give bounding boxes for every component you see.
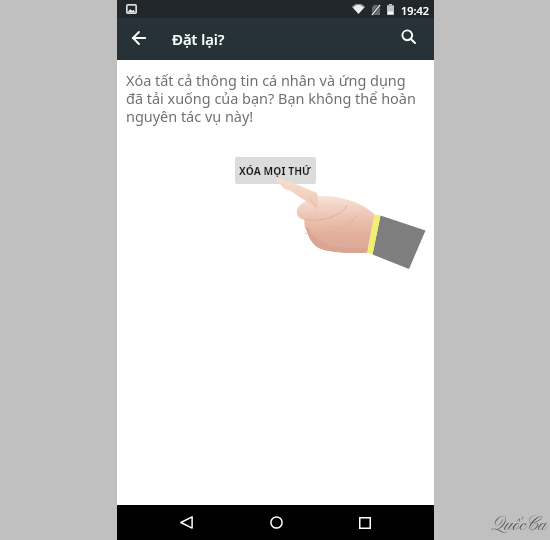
staticText: Đặt lại?	[172, 29, 225, 49]
button[interactable]: Search	[392, 21, 426, 55]
button[interactable]: Back	[122, 21, 156, 55]
button[interactable]: Recents	[343, 505, 387, 540]
staticText: QuốcCa	[491, 513, 547, 537]
staticText: 19:42	[401, 3, 430, 18]
button[interactable]: Home	[254, 505, 298, 540]
button[interactable]: Back	[164, 505, 208, 540]
button[interactable]: XÓA MỌI THỨ	[235, 157, 316, 184]
staticText: Xóa tất cả thông tin cá nhân và ứng dụng…	[126, 71, 420, 126]
staticText: XÓA MỌI THỨ	[239, 164, 312, 178]
